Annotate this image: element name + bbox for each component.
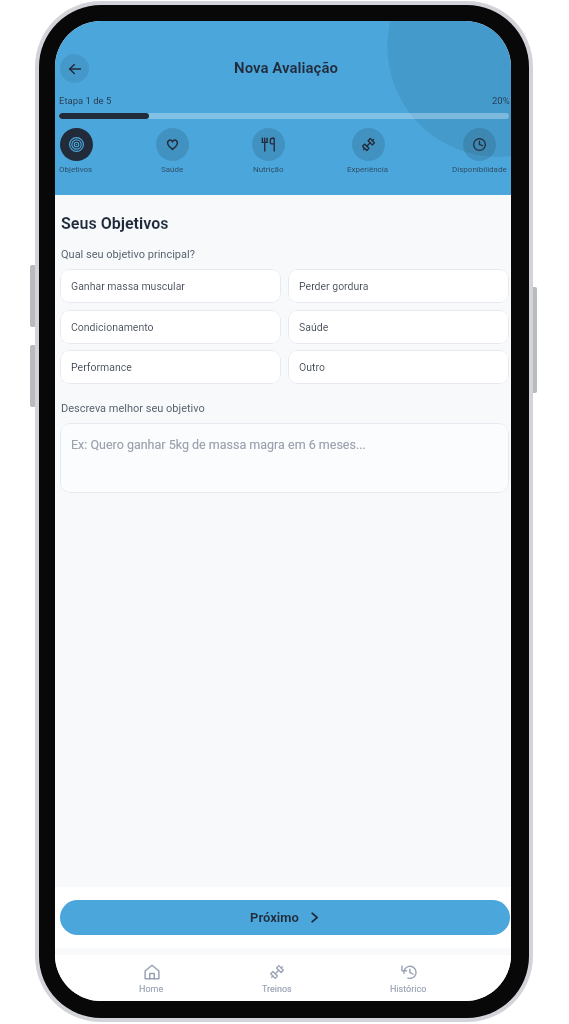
staticText: Saúde xyxy=(161,165,184,174)
button[interactable]: Experiência xyxy=(347,128,389,174)
button[interactable]: Voltar xyxy=(60,54,89,83)
staticText: Disponibilidade xyxy=(452,165,507,174)
button[interactable]: Saúde xyxy=(156,128,189,174)
staticText: Etapa 1 de 5 xyxy=(59,95,112,106)
button[interactable]: Home xyxy=(139,964,164,995)
staticText: Ganhar massa muscular xyxy=(71,280,185,292)
staticText: Perder gordura xyxy=(299,280,369,292)
staticText: Saúde xyxy=(299,321,329,333)
staticText: 20% xyxy=(492,95,510,106)
button[interactable]: Condicionamento xyxy=(60,310,281,344)
button[interactable]: Outro xyxy=(288,350,509,384)
staticText: Descreva melhor seu objetivo xyxy=(61,402,205,415)
staticText: Seus Objetivos xyxy=(61,214,169,233)
button[interactable]: Performance xyxy=(60,350,281,384)
button[interactable]: Saúde xyxy=(288,310,509,344)
staticText: Objetivos xyxy=(59,165,93,174)
staticText: Outro xyxy=(299,361,325,373)
staticText: Nutrição xyxy=(253,165,284,174)
staticText: Ex: Quero ganhar 5kg de massa magra em 6… xyxy=(71,437,366,452)
staticText: Home xyxy=(139,984,164,995)
button[interactable]: Perder gordura xyxy=(288,269,509,303)
button[interactable]: Objetivos xyxy=(59,128,93,174)
button[interactable]: Histórico xyxy=(390,964,427,995)
staticText: Condicionamento xyxy=(71,321,154,333)
button[interactable]: Ex: Quero ganhar 5kg de massa magra em 6… xyxy=(60,423,509,493)
staticText: Qual seu objetivo principal? xyxy=(61,248,195,261)
button[interactable]: Disponibilidade xyxy=(452,128,507,174)
button[interactable]: Treinos xyxy=(262,964,292,995)
button[interactable]: Ganhar massa muscular xyxy=(60,269,281,303)
staticText: Histórico xyxy=(390,984,427,995)
staticText: Nova Avaliação xyxy=(58,59,511,77)
staticText: Experiência xyxy=(347,165,389,174)
staticText: Próximo xyxy=(250,910,299,925)
button[interactable]: Nutrição xyxy=(252,128,285,174)
staticText: Performance xyxy=(71,361,132,373)
staticText: Treinos xyxy=(262,984,292,995)
button[interactable]: Próximo xyxy=(60,900,510,935)
